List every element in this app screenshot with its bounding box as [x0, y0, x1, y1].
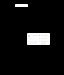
- button[interactable]: [39, 40, 49, 43]
- button[interactable]: [39, 37, 49, 40]
- button[interactable]: [39, 34, 49, 37]
- button[interactable]: [39, 43, 49, 45]
- button[interactable]: Title: [15, 4, 28, 7]
- button[interactable]: Menu: [27, 33, 50, 45]
